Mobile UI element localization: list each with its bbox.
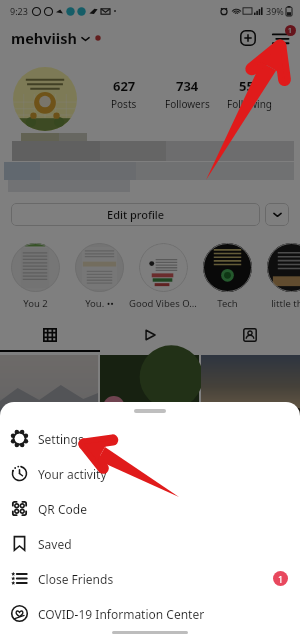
staticText: Settings [38,431,84,447]
button[interactable]: Saved [0,526,300,561]
button[interactable]: Good Vibes O... [125,243,201,310]
staticText: COVID-19 Information Center [38,606,205,622]
button[interactable]: Edit profile [11,203,260,226]
staticText: Posts [111,97,137,111]
button[interactable]: QR Code [0,491,300,526]
button[interactable]: Tech [189,243,265,310]
button[interactable]: 551 [210,77,290,111]
button[interactable]: Menu [268,26,292,50]
button[interactable]: You 2 [0,243,73,310]
button[interactable]: More options [265,203,289,226]
button[interactable]: You. •• [61,243,137,310]
button[interactable]: Profile photo [13,67,77,131]
staticText: Edit profile [107,207,165,222]
button[interactable]: Tagged [200,322,300,352]
button[interactable]: Settings [0,421,300,456]
staticText: Your activity [38,466,107,482]
staticText: 551 [239,77,262,95]
button[interactable]: Grid view [0,322,100,352]
button[interactable]: COVID-19 Information Center [0,596,300,631]
button[interactable]: Close Friends [0,561,300,596]
button[interactable]: 627 [84,77,164,111]
staticText: 1 [278,573,284,585]
staticText: You. •• [85,297,114,310]
staticText: Good Vibes O... [129,297,197,310]
staticText: 9:23 [10,5,28,17]
staticText: You 2 [23,297,48,310]
button[interactable]: little thin [253,243,300,310]
staticText: QR Code [38,501,87,517]
staticText: 627 [113,77,136,95]
staticText: 39% [266,5,284,17]
staticText: 734 [176,77,199,95]
staticText: Close Friends [38,571,114,587]
staticText: Followers [165,97,210,111]
staticText: mehviish [11,28,77,48]
button[interactable]: Reels [100,322,200,352]
staticText: Following [227,97,273,111]
button[interactable]: Your activity [0,456,300,491]
button[interactable]: New post [236,26,260,50]
staticText: Tech [217,297,238,310]
button[interactable]: 734 [147,77,227,111]
staticText: little thin [271,297,300,310]
staticText: 1 [288,26,293,36]
staticText: Saved [38,536,72,552]
